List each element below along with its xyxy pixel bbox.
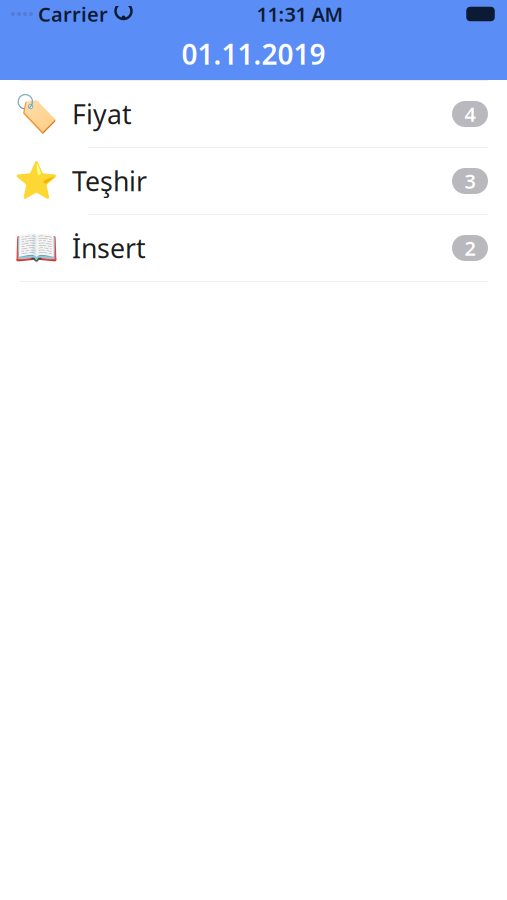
staticText: 📖	[13, 227, 58, 268]
staticText: Carrier	[38, 1, 108, 27]
staticText: 2	[464, 235, 475, 261]
staticText: İnsert	[72, 230, 146, 266]
staticText: 3	[464, 168, 475, 194]
staticText: Teşhir	[72, 163, 147, 199]
staticText: 🏷️	[13, 93, 58, 134]
staticText: ⭐️	[13, 160, 58, 201]
button[interactable]: 🏷️	[0, 81, 507, 147]
staticText: 01.11.2019	[181, 35, 325, 73]
staticText: Fiyat	[72, 96, 132, 132]
button[interactable]: 📖	[0, 215, 507, 281]
staticText: 11:31 AM	[256, 1, 343, 27]
staticText: 4	[464, 101, 475, 127]
button[interactable]: ⭐️	[0, 148, 507, 214]
